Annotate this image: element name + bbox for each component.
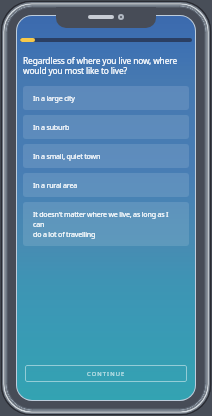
button[interactable]: In a rural area	[23, 173, 189, 197]
staticText: It doesn't matter where we live, as long…	[33, 209, 181, 239]
staticText: CONTINUE	[87, 370, 126, 378]
staticText: In a rural area	[33, 180, 77, 190]
staticText: Regardless of where you live now, where …	[23, 55, 177, 77]
staticText: In a small, quiet town	[33, 151, 101, 161]
button[interactable]: In a large city	[23, 86, 189, 110]
button[interactable]: In a suburb	[23, 115, 189, 139]
button[interactable]: In a small, quiet town	[23, 144, 189, 168]
button[interactable]: It doesn't matter where we live, as long…	[23, 202, 189, 246]
staticText: In a large city	[33, 93, 75, 103]
button[interactable]: CONTINUE	[25, 365, 187, 382]
staticText: In a suburb	[33, 122, 70, 132]
